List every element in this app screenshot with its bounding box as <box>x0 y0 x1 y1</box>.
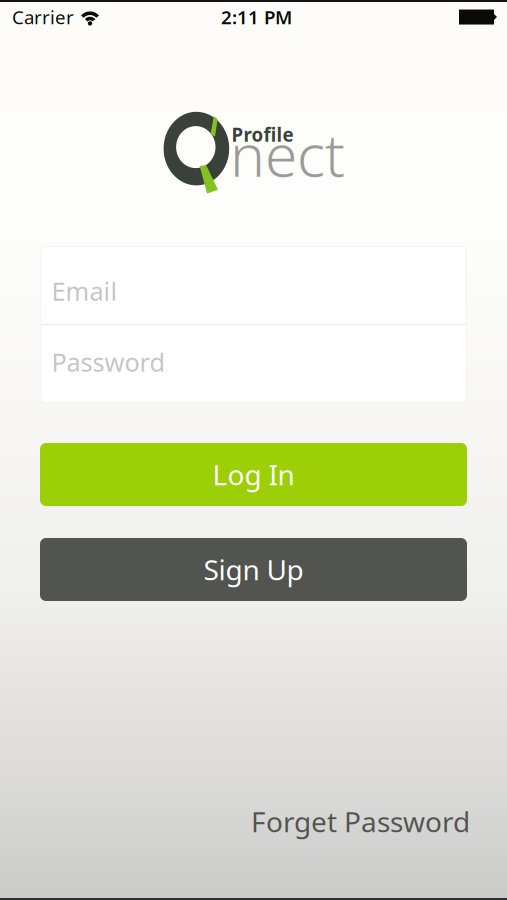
button[interactable]: Password <box>40 325 466 403</box>
button[interactable]: Log In <box>40 443 467 506</box>
staticText: Email <box>51 274 117 308</box>
staticText: Log In <box>212 456 294 493</box>
button[interactable]: Forget Password <box>251 803 470 840</box>
staticText: Forget Password <box>251 803 470 840</box>
button[interactable]: Sign Up <box>40 538 467 601</box>
staticText: nect <box>230 115 345 193</box>
staticText: Profile <box>231 122 293 147</box>
staticText: Carrier <box>12 5 74 29</box>
staticText: Sign Up <box>203 551 303 588</box>
button[interactable]: Email <box>40 246 466 324</box>
staticText: 2:11 PM <box>221 5 292 29</box>
staticText: Password <box>51 345 165 379</box>
